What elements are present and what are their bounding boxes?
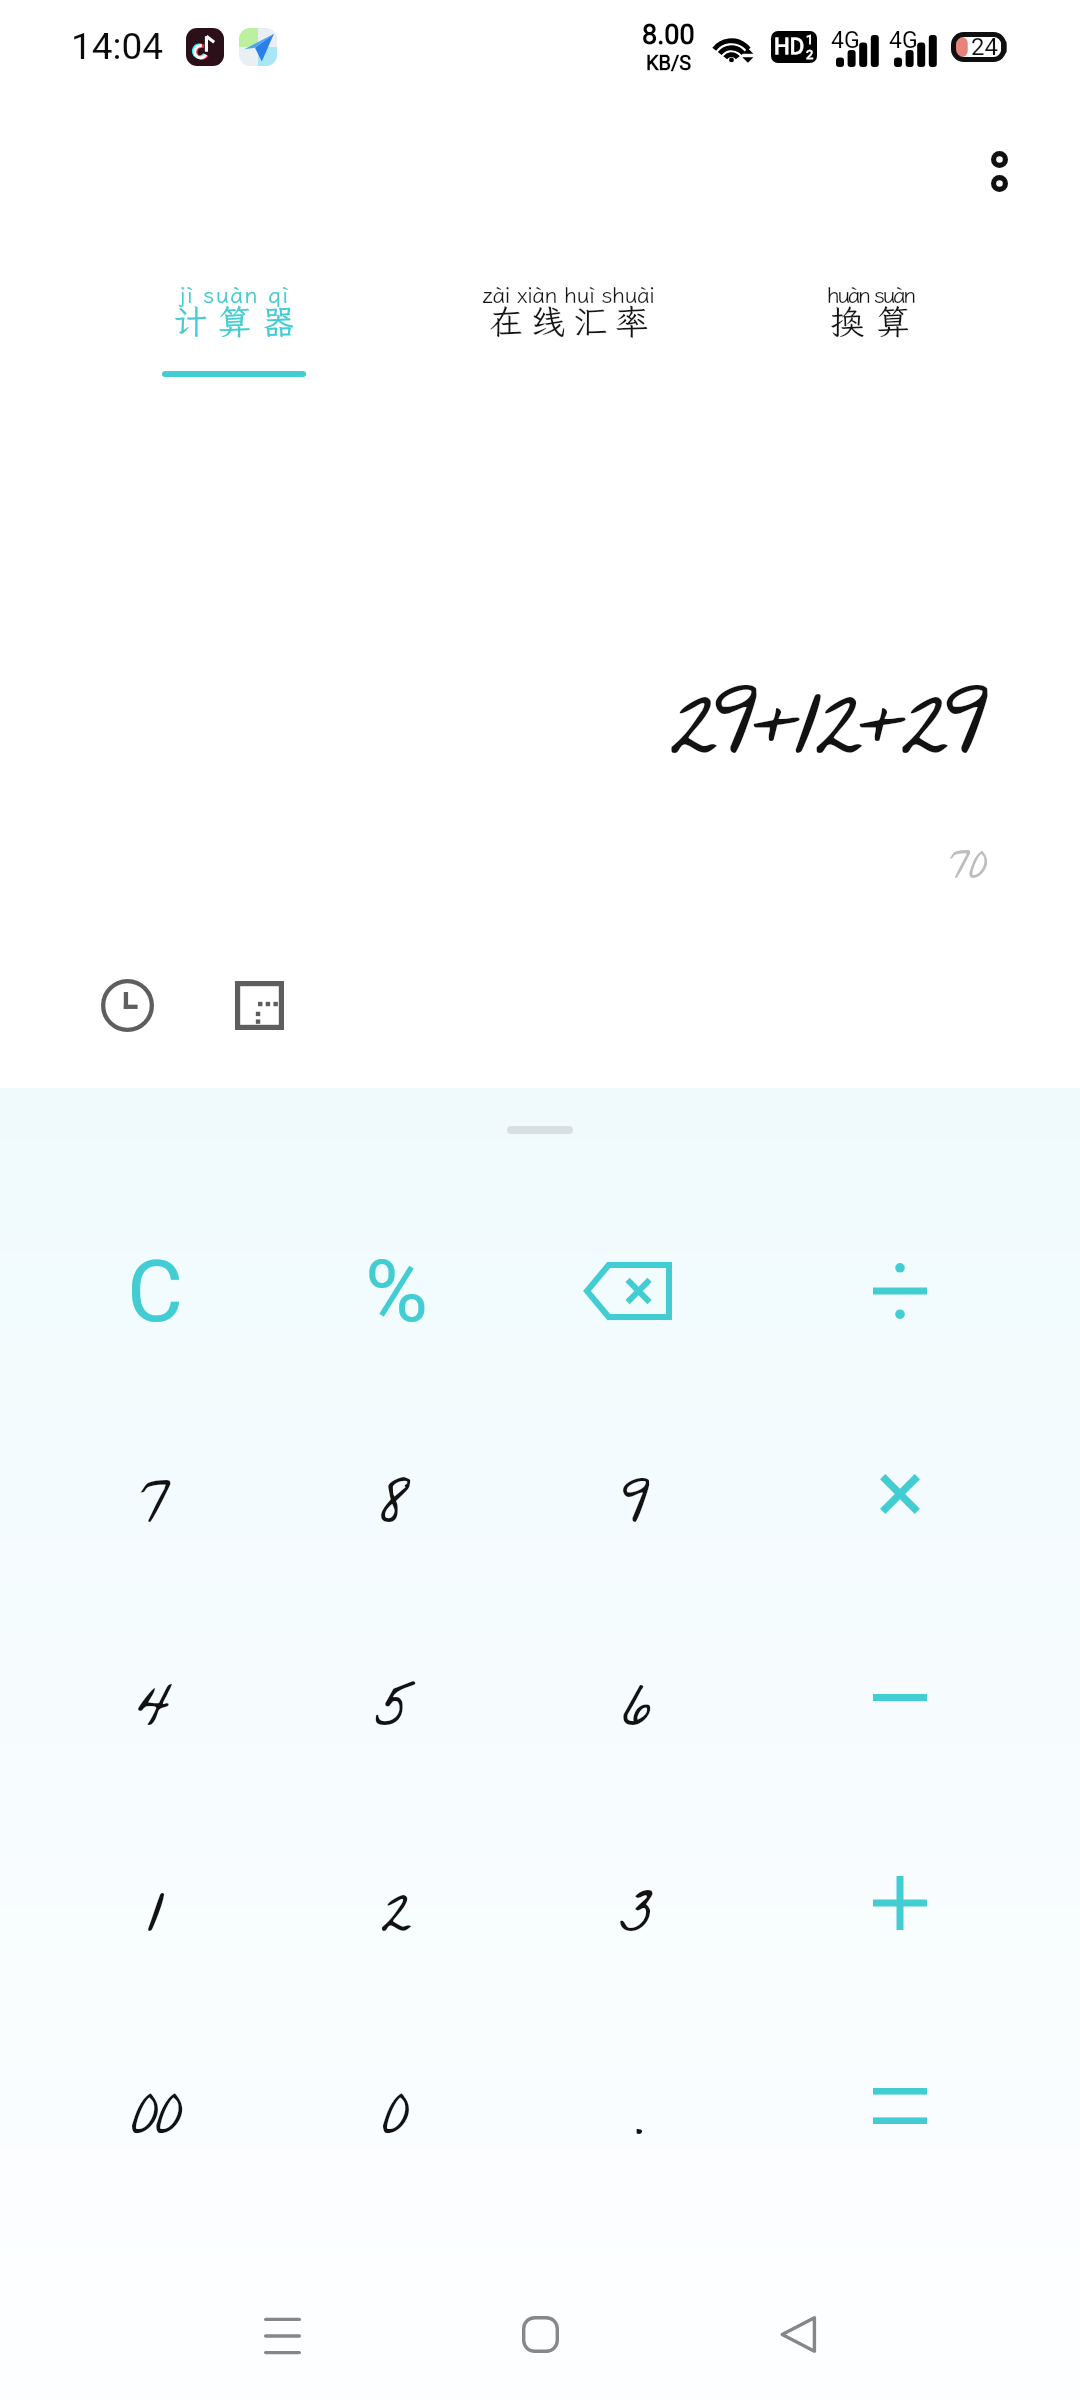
button[interactable]: Add xyxy=(780,1801,1020,2005)
staticText: KB/S xyxy=(646,51,692,74)
staticText: 换 算 xyxy=(710,299,1030,344)
staticText: zài xiàn huì shuài xyxy=(408,279,728,309)
button[interactable]: 6 xyxy=(516,1613,756,1817)
staticText: 0 xyxy=(382,2067,411,2182)
button[interactable]: 0 xyxy=(276,2022,516,2226)
staticText: 9 xyxy=(621,1455,651,1570)
staticText: 2 xyxy=(806,47,814,62)
staticText: 4G xyxy=(889,27,918,54)
button[interactable]: Backspace xyxy=(508,1189,748,1393)
staticText: HD xyxy=(774,34,805,60)
staticText: 70 xyxy=(949,833,987,911)
button[interactable]: Multiply xyxy=(780,1392,1020,1596)
button[interactable]: jì suàn qì xyxy=(74,268,394,388)
button[interactable]: Back xyxy=(718,2259,878,2400)
button[interactable]: History xyxy=(86,964,168,1046)
staticText: 6 xyxy=(622,1658,651,1773)
staticText: 1 xyxy=(806,32,814,47)
staticText: 24 xyxy=(971,33,998,61)
staticText: 8 xyxy=(380,1455,412,1570)
button[interactable]: Subtract xyxy=(780,1595,1020,1799)
staticText: 4G xyxy=(831,27,860,54)
staticText: 在 线 汇 率 xyxy=(408,299,728,344)
button[interactable]: Divide xyxy=(780,1189,1020,1393)
staticText: 00 xyxy=(131,2067,180,2182)
staticText: C xyxy=(127,1241,183,1342)
staticText: huàn suàn xyxy=(710,279,1030,309)
staticText: 2 xyxy=(380,1864,413,1979)
staticText: jì suàn qì xyxy=(74,279,394,309)
staticText: 7 xyxy=(139,1455,172,1570)
button[interactable]: 8 xyxy=(276,1410,516,1614)
button[interactable]: zài xiàn huì shuài xyxy=(408,268,728,388)
staticText: % xyxy=(365,1241,428,1342)
button[interactable]: 7 xyxy=(35,1410,275,1614)
button[interactable]: 9 xyxy=(516,1410,756,1614)
button[interactable]: 4 xyxy=(35,1613,275,1817)
staticText: 4 xyxy=(137,1658,174,1773)
button[interactable]: Recents xyxy=(202,2259,362,2400)
button[interactable]: huàn suàn xyxy=(710,268,1030,388)
button[interactable]: 1 xyxy=(35,1819,275,2023)
button[interactable]: 5 xyxy=(276,1613,516,1817)
button[interactable]: Equals xyxy=(780,2004,1020,2208)
button[interactable]: Home xyxy=(460,2259,620,2400)
button[interactable]: 3 xyxy=(516,1819,756,2023)
staticText: 5 xyxy=(375,1658,417,1773)
button[interactable]: 00 xyxy=(35,2022,275,2226)
staticText: 14:04 xyxy=(71,25,164,68)
staticText: 1 xyxy=(147,1864,164,1979)
staticText: 8.00 xyxy=(642,19,695,51)
button[interactable]: 2 xyxy=(276,1819,516,2023)
button[interactable]: . xyxy=(516,2022,756,2226)
staticText: 29+12+29 xyxy=(669,649,984,829)
button[interactable]: C xyxy=(35,1189,275,1393)
button[interactable]: Screenshot region xyxy=(218,964,300,1046)
button[interactable]: More options xyxy=(963,135,1035,207)
staticText: 计 算 器 xyxy=(74,299,394,344)
staticText: . xyxy=(628,2067,644,2182)
staticText: 3 xyxy=(619,1864,654,1979)
button[interactable]: % xyxy=(276,1189,516,1393)
